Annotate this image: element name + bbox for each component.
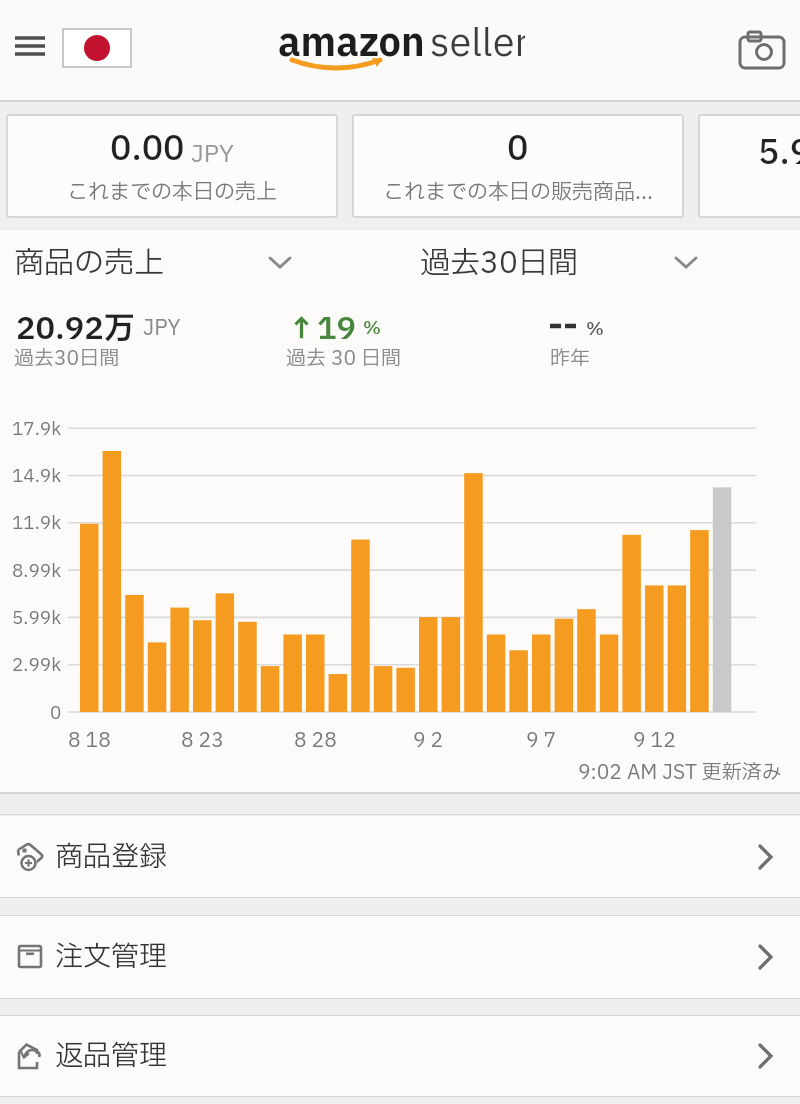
staticText: 5.99k [12, 605, 62, 629]
button[interactable] [62, 28, 132, 68]
staticText: 昨年 [550, 344, 590, 372]
staticText: 9 7 [526, 726, 557, 752]
button[interactable]: 返品管理 [0, 1016, 800, 1096]
staticText: 商品の売上 [14, 241, 164, 286]
staticText: 9 2 [413, 726, 444, 752]
staticText: seller [430, 16, 525, 68]
button[interactable]: 0.00 [6, 114, 338, 218]
staticText: 17.9k [12, 416, 62, 440]
staticText: ↑19 [286, 306, 357, 346]
button[interactable] [410, 238, 710, 288]
staticText: 注文管理 [55, 936, 168, 978]
staticText: 8.99k [12, 558, 62, 582]
staticText: amazon [278, 16, 423, 68]
staticText: % [363, 315, 381, 342]
staticText: 9 12 [633, 726, 676, 752]
staticText: 8 28 [294, 726, 337, 752]
button[interactable]: 注文管理 [0, 916, 800, 998]
staticText: 5.94万 [758, 128, 800, 172]
staticText: 2.99k [12, 652, 62, 676]
staticText: これまでの本日の売上 [67, 177, 277, 208]
staticText: 過去30日間 [14, 344, 120, 372]
staticText: 8 23 [181, 726, 224, 752]
staticText: % [586, 316, 604, 343]
staticText: 9:02 AM JST 更新済み [578, 758, 782, 788]
staticText: 返品管理 [55, 1035, 168, 1077]
staticText: 20.92万 [16, 306, 135, 346]
staticText: JPY [185, 137, 234, 173]
button[interactable] [6, 25, 54, 69]
staticText: 0 [507, 124, 529, 175]
button[interactable] [0, 238, 400, 288]
button[interactable]: 商品登録 [0, 816, 800, 897]
staticText: 0.00 [110, 124, 185, 175]
staticText: 8 18 [68, 726, 111, 752]
button[interactable] [732, 26, 792, 74]
button[interactable]: 0 [352, 114, 684, 218]
staticText: これまでの本日の販売商品... [383, 177, 653, 208]
staticText: 0 [50, 700, 62, 724]
staticText: 過去30日間 [420, 241, 578, 286]
button[interactable]: 5.94万 [698, 114, 800, 218]
staticText: 商品登録 [55, 836, 168, 878]
staticText: 11.9k [12, 510, 62, 534]
staticText: 14.9k [12, 463, 62, 487]
staticText: 過去 30 日間 [286, 344, 402, 372]
staticText: JPY [143, 313, 181, 344]
